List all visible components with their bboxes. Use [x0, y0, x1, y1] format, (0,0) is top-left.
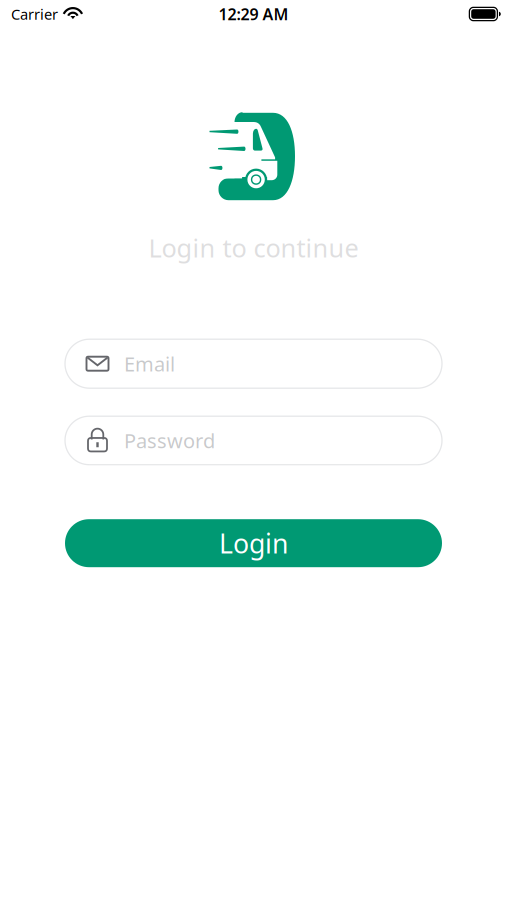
button[interactable]: Login	[65, 519, 442, 567]
staticText: 12:29 AM	[218, 3, 288, 25]
staticText: Password	[124, 427, 215, 454]
staticText: Login	[219, 525, 288, 561]
staticText: Email	[124, 350, 175, 377]
staticText: Carrier	[11, 4, 58, 24]
button[interactable]: Password	[65, 416, 442, 465]
staticText: Login to continue	[148, 231, 358, 264]
button[interactable]: Email	[65, 339, 442, 388]
